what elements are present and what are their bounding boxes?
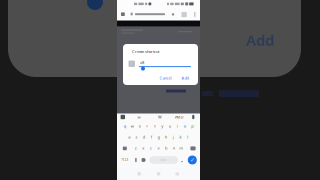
staticText: x (142, 145, 144, 151)
staticText: k (179, 134, 181, 140)
staticText: j (173, 134, 174, 140)
staticText: w (137, 114, 140, 120)
staticText: Cancel (159, 75, 171, 81)
staticText: f (151, 134, 152, 140)
staticText: b (165, 145, 167, 151)
staticText: p (191, 123, 193, 129)
staticText: l (187, 134, 188, 140)
staticText: a (128, 134, 130, 140)
staticText: c (150, 145, 152, 151)
staticText: t (154, 123, 155, 129)
staticText: i (177, 123, 178, 129)
staticText: q (124, 123, 126, 129)
staticText: w (131, 123, 134, 129)
staticText: W (158, 114, 162, 120)
staticText: Create shortcut (132, 49, 159, 54)
staticText: VMD (174, 114, 183, 120)
staticText: s (135, 134, 137, 140)
staticText: Add (181, 75, 188, 81)
staticText: y (161, 123, 163, 129)
staticText: r (146, 123, 148, 129)
staticText: d (143, 134, 145, 140)
staticText: e (139, 123, 141, 129)
staticText: v8 (140, 60, 144, 65)
staticText: h (165, 134, 167, 140)
staticText: ✓ (190, 157, 194, 163)
staticText: ••• (160, 157, 166, 163)
staticText: u (169, 123, 171, 129)
staticText: m (179, 145, 183, 151)
staticText: Add (246, 30, 274, 50)
staticText: ?123 (121, 158, 128, 162)
staticText: o (184, 123, 186, 129)
staticText: v (157, 145, 159, 151)
staticText: z (135, 145, 137, 151)
staticText: n (173, 145, 175, 151)
staticText: g (157, 134, 159, 140)
